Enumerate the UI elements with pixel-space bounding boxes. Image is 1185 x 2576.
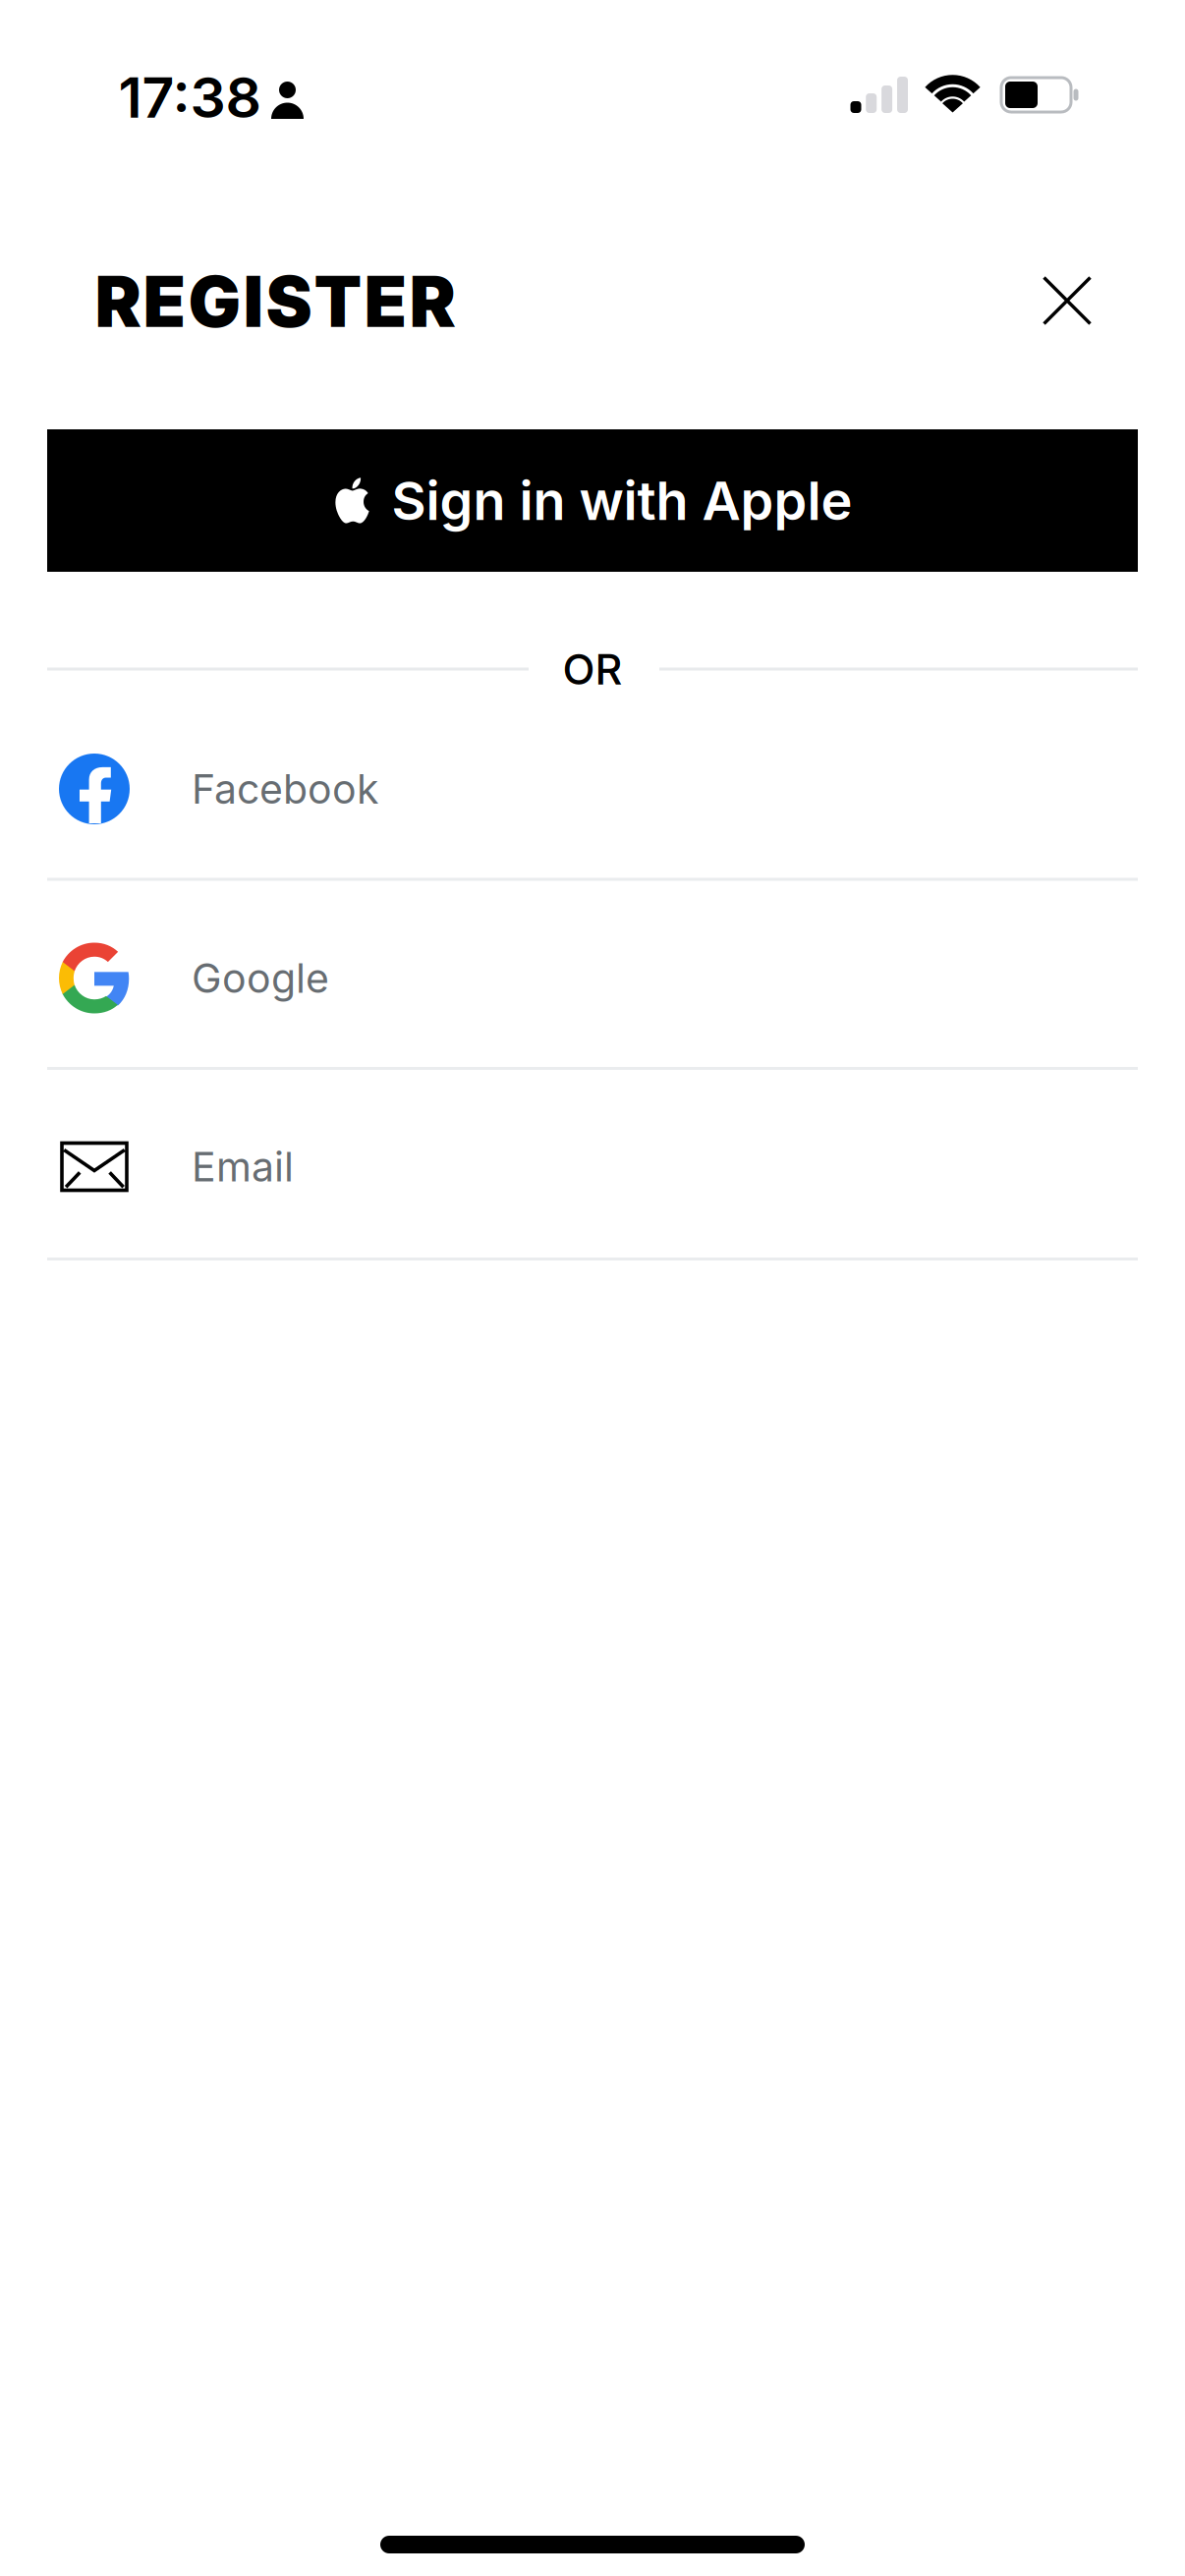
- staticText: 17:38: [118, 63, 261, 131]
- button[interactable]: Sign in with Apple: [47, 429, 1138, 572]
- staticText: Email: [192, 1142, 294, 1191]
- staticText: Facebook: [192, 765, 379, 813]
- staticText: Google: [192, 954, 329, 1002]
- staticText: OR: [563, 644, 622, 695]
- button[interactable]: Close: [1044, 277, 1091, 324]
- staticText: REGISTER: [95, 259, 455, 344]
- button[interactable]: Google: [47, 885, 1138, 1071]
- button[interactable]: Email: [47, 1073, 1138, 1260]
- staticText: Sign in with Apple: [392, 468, 852, 533]
- button[interactable]: Facebook: [47, 696, 1138, 882]
